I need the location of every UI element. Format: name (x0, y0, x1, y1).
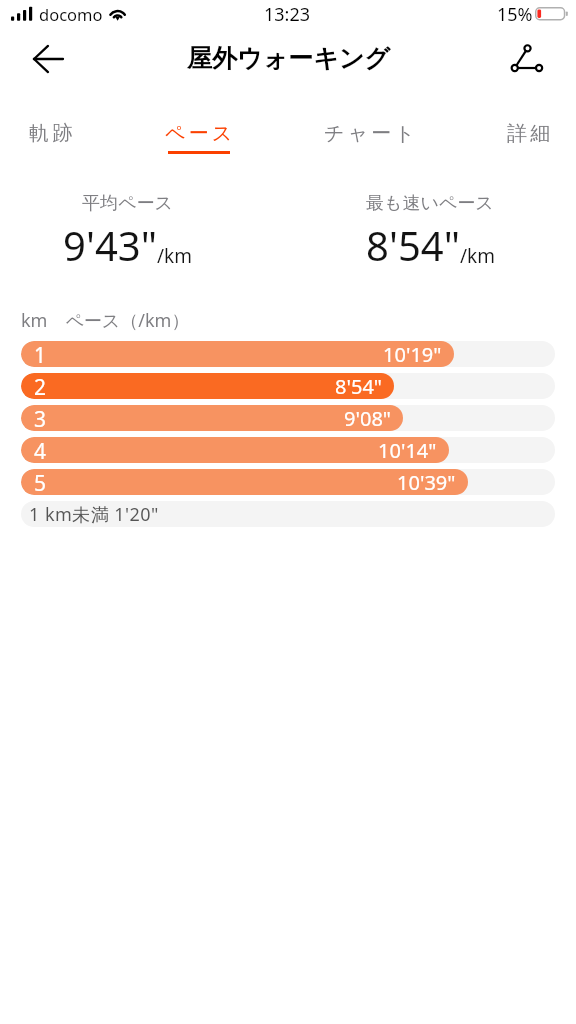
staticText: 軌跡 (29, 121, 76, 146)
button[interactable]: チャート (311, 108, 431, 160)
button[interactable]: Back (24, 35, 72, 83)
staticText: 屋外ウォーキング (187, 43, 390, 74)
staticText: 2 (34, 373, 47, 399)
staticText: 詳細 (507, 121, 554, 146)
button[interactable]: ペース (145, 108, 255, 160)
staticText: 9'08" (344, 405, 391, 431)
staticText: km ペース（/km） (21, 308, 190, 333)
staticText: 10'19" (383, 341, 442, 367)
staticText: 9'43" (63, 218, 157, 272)
button[interactable]: 1 (21, 341, 555, 367)
button[interactable]: 軌跡 (2, 108, 102, 160)
staticText: 8'54" (335, 373, 382, 399)
button[interactable]: 4 (21, 437, 555, 463)
button[interactable]: 3 (21, 405, 555, 431)
staticText: 最も速いペース (366, 192, 494, 215)
staticText: docomo (39, 3, 103, 25)
staticText: 10'14" (378, 437, 437, 463)
button[interactable]: 1 km未満 1'20" (21, 501, 555, 527)
staticText: 5 (34, 469, 47, 495)
staticText: ペース (165, 121, 236, 146)
staticText: 10'39" (397, 469, 456, 495)
staticText: 3 (34, 405, 47, 431)
button[interactable]: 2 (21, 373, 555, 399)
button[interactable]: Share (503, 35, 551, 83)
button[interactable]: 5 (21, 469, 555, 495)
staticText: 4 (34, 437, 47, 463)
button[interactable]: 詳細 (480, 108, 576, 160)
staticText: 平均ペース (82, 192, 173, 215)
staticText: /km (460, 243, 495, 269)
staticText: 1 (34, 341, 47, 367)
staticText: 1 km未満 1'20" (29, 502, 159, 527)
staticText: /km (157, 243, 192, 269)
staticText: 8'54" (366, 218, 460, 272)
staticText: 15% (497, 2, 533, 27)
staticText: 13:23 (264, 2, 311, 27)
staticText: チャート (324, 121, 419, 146)
